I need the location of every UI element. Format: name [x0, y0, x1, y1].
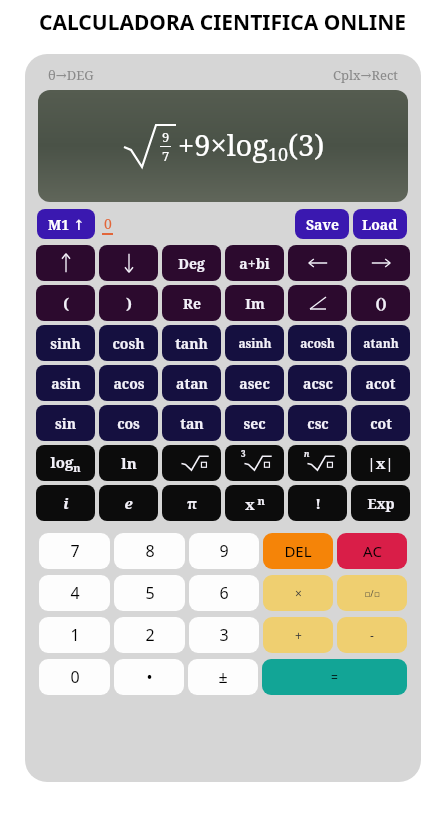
- staticText: x n: [245, 493, 265, 514]
- button[interactable]: Angle: [288, 285, 347, 321]
- button[interactable]: 7: [39, 533, 110, 569]
- staticText: 7: [70, 540, 80, 562]
- button[interactable]: cosh: [99, 325, 158, 361]
- button[interactable]: 9: [38, 90, 408, 202]
- button[interactable]: 6: [189, 575, 259, 611]
- button[interactable]: π: [162, 485, 221, 521]
- staticText: (): [375, 294, 387, 313]
- button[interactable]: Im: [225, 285, 284, 321]
- button[interactable]: a+bi: [225, 245, 284, 281]
- staticText: Re: [183, 294, 201, 313]
- button[interactable]: sin: [36, 405, 95, 441]
- button[interactable]: (): [351, 285, 410, 321]
- staticText: |x|: [367, 453, 394, 473]
- button[interactable]: 4: [39, 575, 110, 611]
- staticText: 0: [70, 666, 80, 688]
- button[interactable]: ): [99, 285, 158, 321]
- button[interactable]: i: [36, 485, 95, 521]
- button[interactable]: Cplx→Rect: [333, 66, 398, 84]
- staticText: atan: [176, 374, 208, 393]
- button[interactable]: =: [262, 659, 407, 695]
- button[interactable]: tan: [162, 405, 221, 441]
- button[interactable]: csc: [288, 405, 347, 441]
- staticText: ×: [295, 585, 302, 601]
- button[interactable]: acosh: [288, 325, 347, 361]
- button[interactable]: Save: [295, 209, 349, 239]
- button[interactable]: logn: [36, 445, 95, 481]
- staticText: 3: [219, 624, 229, 646]
- button[interactable]: e: [99, 485, 158, 521]
- button[interactable]: asec: [225, 365, 284, 401]
- staticText: !: [315, 493, 321, 513]
- button[interactable]: M1 ↑: [37, 209, 95, 239]
- staticText: 0: [104, 214, 112, 233]
- button[interactable]: Cube root: [225, 445, 284, 481]
- button[interactable]: asinh: [225, 325, 284, 361]
- button[interactable]: Cursor left: [288, 245, 347, 281]
- staticText: (: [63, 294, 69, 313]
- button[interactable]: Nth root: [288, 445, 347, 481]
- button[interactable]: cos: [99, 405, 158, 441]
- button[interactable]: Exp: [351, 485, 410, 521]
- staticText: ln: [121, 453, 137, 473]
- staticText: 4: [70, 582, 80, 604]
- button[interactable]: acsc: [288, 365, 347, 401]
- button[interactable]: sinh: [36, 325, 95, 361]
- button[interactable]: Scroll up: [36, 245, 95, 281]
- button[interactable]: +: [263, 617, 333, 653]
- staticText: Deg: [178, 254, 205, 273]
- button[interactable]: Cursor right: [351, 245, 410, 281]
- staticText: a+bi: [239, 254, 270, 273]
- button[interactable]: AC: [337, 533, 407, 569]
- staticText: acos: [113, 374, 145, 393]
- button[interactable]: atanh: [351, 325, 410, 361]
- button[interactable]: Scroll down: [99, 245, 158, 281]
- button[interactable]: ×: [263, 575, 333, 611]
- button[interactable]: |x|: [351, 445, 410, 481]
- staticText: sin: [55, 414, 76, 433]
- button[interactable]: ±: [188, 659, 258, 695]
- button[interactable]: acos: [99, 365, 158, 401]
- staticText: 9: [219, 540, 229, 562]
- button[interactable]: asin: [36, 365, 95, 401]
- staticText: cos: [117, 414, 140, 433]
- button[interactable]: •: [114, 659, 184, 695]
- staticText: 2: [145, 624, 155, 646]
- staticText: AC: [363, 541, 382, 561]
- button[interactable]: (: [36, 285, 95, 321]
- staticText: -: [370, 627, 374, 643]
- staticText: +9×log10(3): [178, 125, 325, 167]
- button[interactable]: acot: [351, 365, 410, 401]
- button[interactable]: 2: [114, 617, 185, 653]
- button[interactable]: Square root: [162, 445, 221, 481]
- staticText: n: [304, 448, 310, 459]
- staticText: Load: [362, 215, 398, 234]
- button[interactable]: ln: [99, 445, 158, 481]
- button[interactable]: tanh: [162, 325, 221, 361]
- button[interactable]: 9: [189, 533, 259, 569]
- button[interactable]: -: [337, 617, 407, 653]
- button[interactable]: atan: [162, 365, 221, 401]
- button[interactable]: 5: [114, 575, 185, 611]
- button[interactable]: Deg: [162, 245, 221, 281]
- button[interactable]: sec: [225, 405, 284, 441]
- staticText: 1: [70, 624, 80, 646]
- button[interactable]: θ→DEG: [48, 66, 94, 84]
- staticText: cot: [370, 414, 392, 433]
- button[interactable]: Load: [353, 209, 407, 239]
- button[interactable]: 8: [114, 533, 185, 569]
- button[interactable]: cot: [351, 405, 410, 441]
- button[interactable]: Re: [162, 285, 221, 321]
- button[interactable]: !: [288, 485, 347, 521]
- staticText: 6: [219, 582, 229, 604]
- button[interactable]: x n: [225, 485, 284, 521]
- button[interactable]: 0: [39, 659, 110, 695]
- button[interactable]: 3: [189, 617, 259, 653]
- staticText: acsc: [303, 374, 333, 393]
- staticText: acot: [365, 374, 396, 393]
- staticText: tan: [180, 414, 204, 433]
- staticText: Exp: [367, 494, 395, 513]
- button[interactable]: DEL: [263, 533, 333, 569]
- button[interactable]: ▫/▫: [337, 575, 407, 611]
- button[interactable]: 1: [39, 617, 110, 653]
